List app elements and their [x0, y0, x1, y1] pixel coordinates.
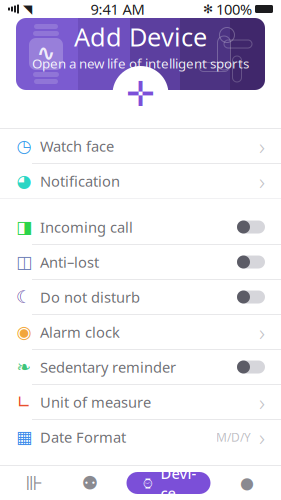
staticText: Device	[160, 463, 196, 500]
staticText: Do not disturb	[40, 287, 140, 307]
staticText: ›	[259, 317, 265, 347]
staticText: ☾	[16, 287, 32, 307]
button[interactable]: Add Device	[112, 66, 168, 122]
button[interactable]: Profile	[219, 466, 275, 500]
button[interactable]: Statistics	[6, 466, 62, 500]
staticText: ◕	[16, 171, 31, 191]
staticText: ❧	[16, 357, 31, 377]
staticText: ◉	[16, 322, 31, 342]
staticText: Watch face	[40, 136, 114, 156]
staticText: ▦	[16, 427, 32, 447]
staticText: ⊪	[25, 472, 42, 494]
staticText: Open a new life of intelligent sports	[32, 54, 249, 72]
staticText: ∟	[16, 392, 31, 412]
button[interactable]: ∟	[0, 385, 281, 419]
staticText: ◫	[16, 252, 32, 272]
button[interactable]: ◷	[0, 129, 281, 163]
staticText: Sedentary reminder	[40, 357, 176, 377]
button[interactable]: ▦	[0, 420, 281, 454]
button[interactable]: ❧	[0, 350, 281, 384]
button[interactable]: ◕	[0, 164, 281, 198]
staticText: Add Device	[74, 20, 207, 53]
staticText: Alarm clock	[40, 322, 120, 342]
staticText: ⌚︎	[140, 473, 155, 493]
staticText: ›	[259, 422, 265, 452]
staticText: M/D/Y	[216, 429, 251, 445]
button[interactable]: ◨	[0, 210, 281, 244]
staticText: ⚉	[81, 472, 98, 494]
button[interactable]: ◉	[0, 315, 281, 349]
staticText: ◨	[16, 217, 32, 237]
staticText: ›	[259, 166, 265, 196]
staticText: Date Format	[40, 427, 126, 447]
staticText: 9:41 AM	[90, 0, 144, 19]
staticText: Anti–lost	[40, 252, 99, 272]
staticText: Incoming call	[40, 217, 133, 237]
staticText: Notification	[40, 171, 120, 191]
staticText: 100%	[216, 0, 252, 19]
staticText: ●	[240, 474, 254, 492]
staticText: ›	[259, 387, 265, 417]
staticText: ∿	[36, 40, 55, 66]
button[interactable]: ⌚︎	[126, 472, 210, 494]
staticText: ›	[259, 131, 265, 161]
staticText: ✛	[126, 74, 155, 114]
staticText: ◥	[23, 2, 32, 16]
staticText: ◷	[16, 136, 31, 156]
button[interactable]: Activity	[62, 466, 118, 500]
staticText: Unit of measure	[40, 392, 151, 412]
button[interactable]: ☾	[0, 280, 281, 314]
staticText: ✻	[203, 2, 213, 16]
button[interactable]: ◫	[0, 245, 281, 279]
